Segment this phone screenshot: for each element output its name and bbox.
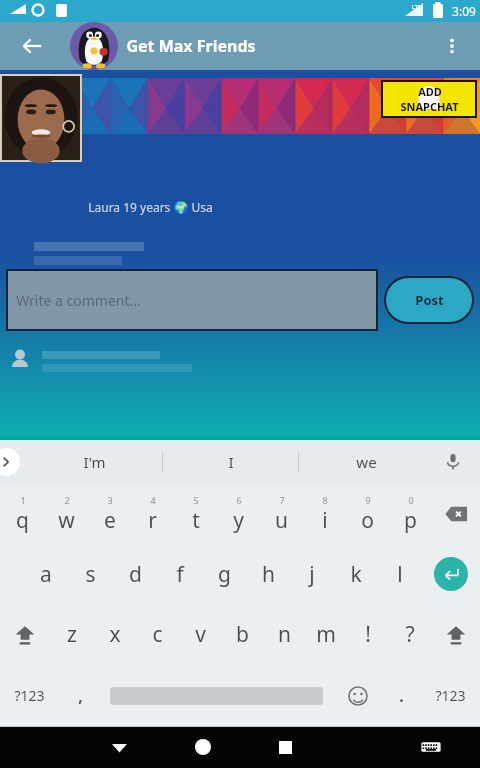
button[interactable]: s [68,544,113,604]
button[interactable]: Space [101,665,332,726]
button[interactable]: ! [347,604,389,665]
staticText: 2 [64,494,70,506]
staticText: p [404,506,417,535]
button[interactable]: Write a comment... [8,271,376,329]
button[interactable]: b [221,604,263,665]
button[interactable]: k [334,544,378,604]
staticText: n [278,620,291,649]
button[interactable]: Voice input [438,447,468,477]
staticText: v [195,620,206,649]
button[interactable]: Enter [422,544,480,604]
button[interactable]: 8 [303,484,346,544]
staticText: ! [365,620,371,649]
button[interactable]: ?123 [0,665,59,726]
button[interactable]: f [158,544,202,604]
button[interactable]: More options [432,26,472,66]
staticText: 4 [150,494,156,506]
button[interactable]: Shift [0,604,50,665]
button[interactable]: Back [12,26,52,66]
button[interactable]: a [23,544,68,604]
button[interactable]: l [378,544,422,604]
staticText: s [85,560,96,589]
staticText: z [67,620,77,649]
button[interactable]: g [202,544,246,604]
staticText: ? [405,620,415,649]
staticText: Write a comment... [16,291,141,310]
staticText: Post [415,291,444,309]
staticText: , [78,685,83,707]
staticText: j [309,560,315,589]
button[interactable]: 2 [44,484,88,544]
staticText: LTE [411,3,422,11]
staticText: b [236,620,249,649]
button[interactable]: we [299,440,434,484]
button[interactable]: v [179,604,221,665]
button[interactable]: . [383,665,420,726]
button[interactable]: 7 [260,484,303,544]
staticText: ADD [418,84,442,99]
button[interactable]: Shift [431,604,480,665]
staticText: Laura 19 years 🌍 Usa [88,199,213,215]
staticText: we [356,452,377,472]
staticText: o [361,506,374,535]
button[interactable]: Emoji [332,665,383,726]
button[interactable]: 1 [0,484,44,544]
button[interactable]: x [93,604,136,665]
button[interactable]: App icon [70,22,118,70]
staticText: w [58,506,75,535]
button[interactable]: Switch keyboard [389,726,472,768]
button[interactable]: Profile photo [0,74,82,162]
button[interactable]: 5 [174,484,217,544]
staticText: ?123 [435,686,466,705]
staticText: 6 [236,494,242,506]
staticText: I [228,452,234,472]
staticText: 8 [322,494,328,506]
button[interactable]: 4 [131,484,174,544]
button[interactable]: Expand suggestions [0,448,20,476]
staticText: 1 [20,494,26,506]
button[interactable]: j [290,544,334,604]
staticText: 3 [107,494,113,506]
button[interactable]: 0 [389,484,432,544]
button[interactable]: Home [161,726,244,768]
button[interactable]: h [246,544,290,604]
button[interactable]: Recent apps [244,726,327,768]
staticText: 5 [193,494,199,506]
button[interactable]: 3 [88,484,131,544]
staticText: e [104,506,116,535]
staticText: a [40,560,52,589]
staticText: q [16,506,29,535]
staticText: 7 [279,494,285,506]
staticText: d [129,560,142,589]
staticText: g [218,560,231,589]
button[interactable]: ADD [383,82,475,116]
button[interactable]: z [50,604,93,665]
button[interactable]: Back [78,726,161,768]
button[interactable]: d [113,544,158,604]
button[interactable]: I'm [26,440,162,484]
button[interactable]: Post [386,278,472,322]
staticText: I'm [83,452,106,472]
staticText: k [350,560,362,589]
staticText: f [176,560,184,589]
button[interactable]: I [163,440,298,484]
staticText: y [233,506,244,535]
button[interactable]: m [305,604,347,665]
staticText: SNAPCHAT [400,99,459,114]
staticText: 9 [365,494,371,506]
staticText: h [262,560,275,589]
staticText: l [397,560,403,589]
button[interactable]: ?123 [420,665,480,726]
staticText: ?123 [14,686,45,705]
staticText: Get Max Friends [126,35,256,57]
button[interactable]: n [263,604,305,665]
button[interactable]: Delete [432,484,480,544]
staticText: i [322,506,328,535]
staticText: r [148,506,157,535]
button[interactable]: 6 [217,484,260,544]
button[interactable]: ? [389,604,431,665]
staticText: 0 [408,494,414,506]
button[interactable]: 9 [346,484,389,544]
button[interactable]: c [136,604,179,665]
button[interactable]: , [59,665,101,726]
